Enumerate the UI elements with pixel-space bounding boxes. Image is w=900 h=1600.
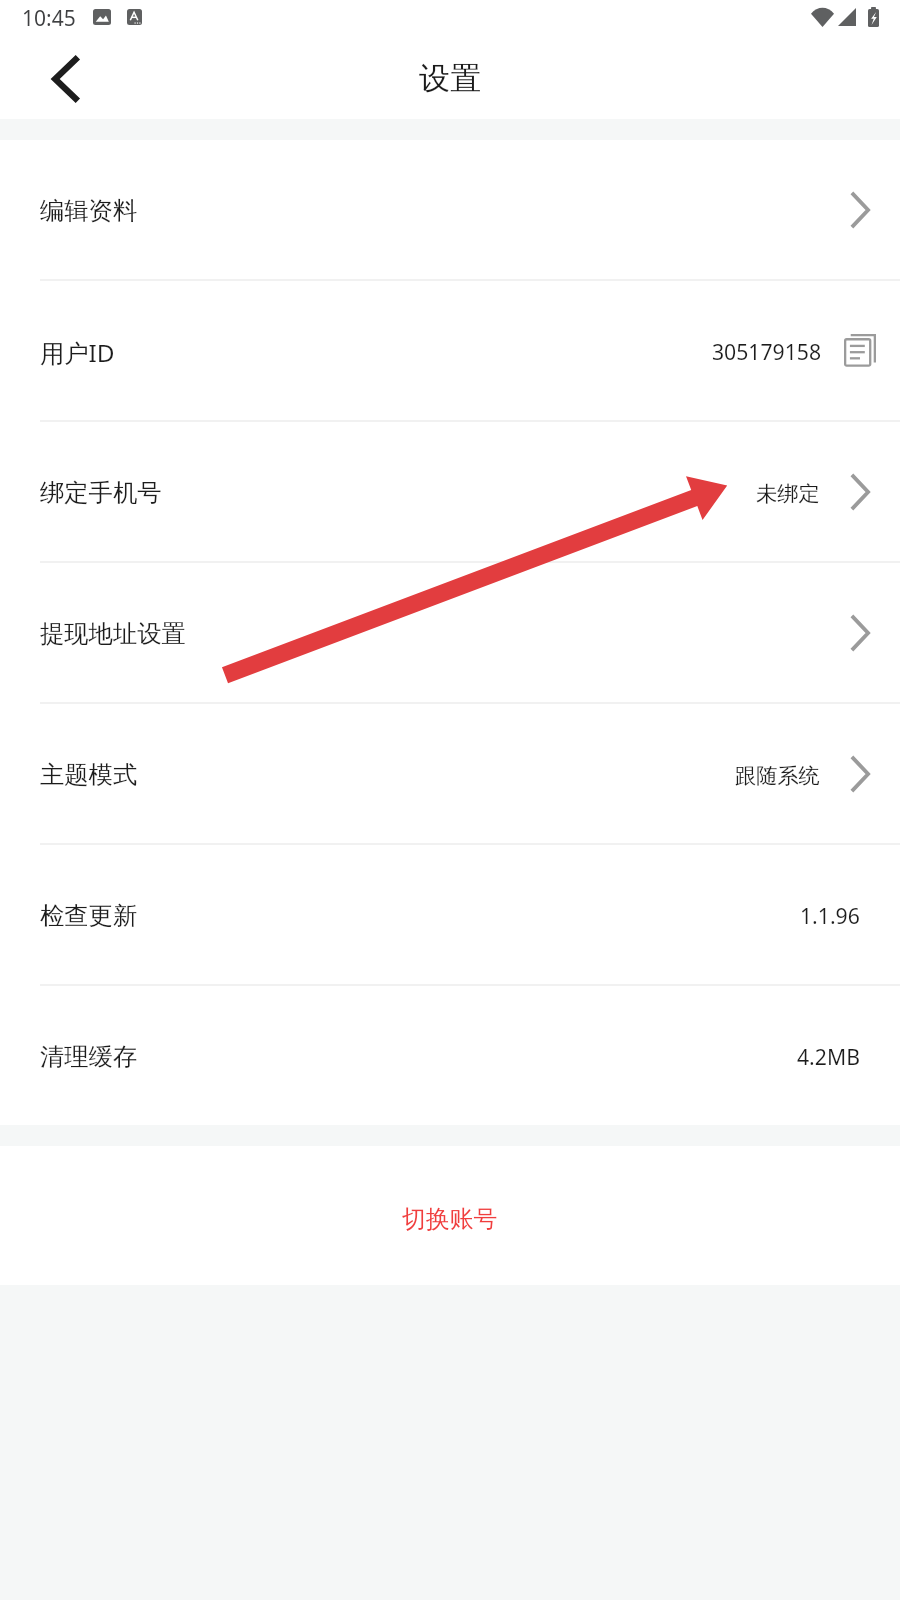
staticText: 4.2MB	[797, 1042, 860, 1071]
staticText: 检查更新	[40, 901, 138, 932]
button[interactable]: 编辑资料	[0, 140, 900, 279]
staticText: 切换账号	[402, 1204, 498, 1234]
button[interactable]: 提现地址设置	[0, 563, 900, 702]
button[interactable]: 检查更新	[0, 845, 900, 984]
staticText: 绑定手机号	[40, 478, 162, 509]
staticText: 10:45	[22, 4, 76, 33]
staticText: 用户ID	[40, 336, 115, 369]
button[interactable]: Copy user ID	[844, 334, 876, 368]
button[interactable]: 主题模式	[0, 704, 900, 843]
staticText: 设置	[419, 59, 481, 98]
staticText: 主题模式	[40, 760, 138, 791]
button[interactable]: 切换账号	[0, 1146, 900, 1285]
staticText: 未绑定	[756, 481, 820, 508]
button[interactable]: 清理缓存	[0, 986, 900, 1125]
button[interactable]: 用户ID	[0, 281, 900, 420]
staticText: 1.1.96	[800, 901, 860, 930]
staticText: 清理缓存	[40, 1042, 138, 1073]
staticText: 305179158	[712, 337, 822, 366]
staticText: 编辑资料	[40, 196, 138, 227]
staticText: 跟随系统	[735, 763, 820, 790]
staticText: 提现地址设置	[40, 619, 186, 650]
button[interactable]: 绑定手机号	[0, 422, 900, 561]
button[interactable]: Back	[0, 38, 132, 119]
